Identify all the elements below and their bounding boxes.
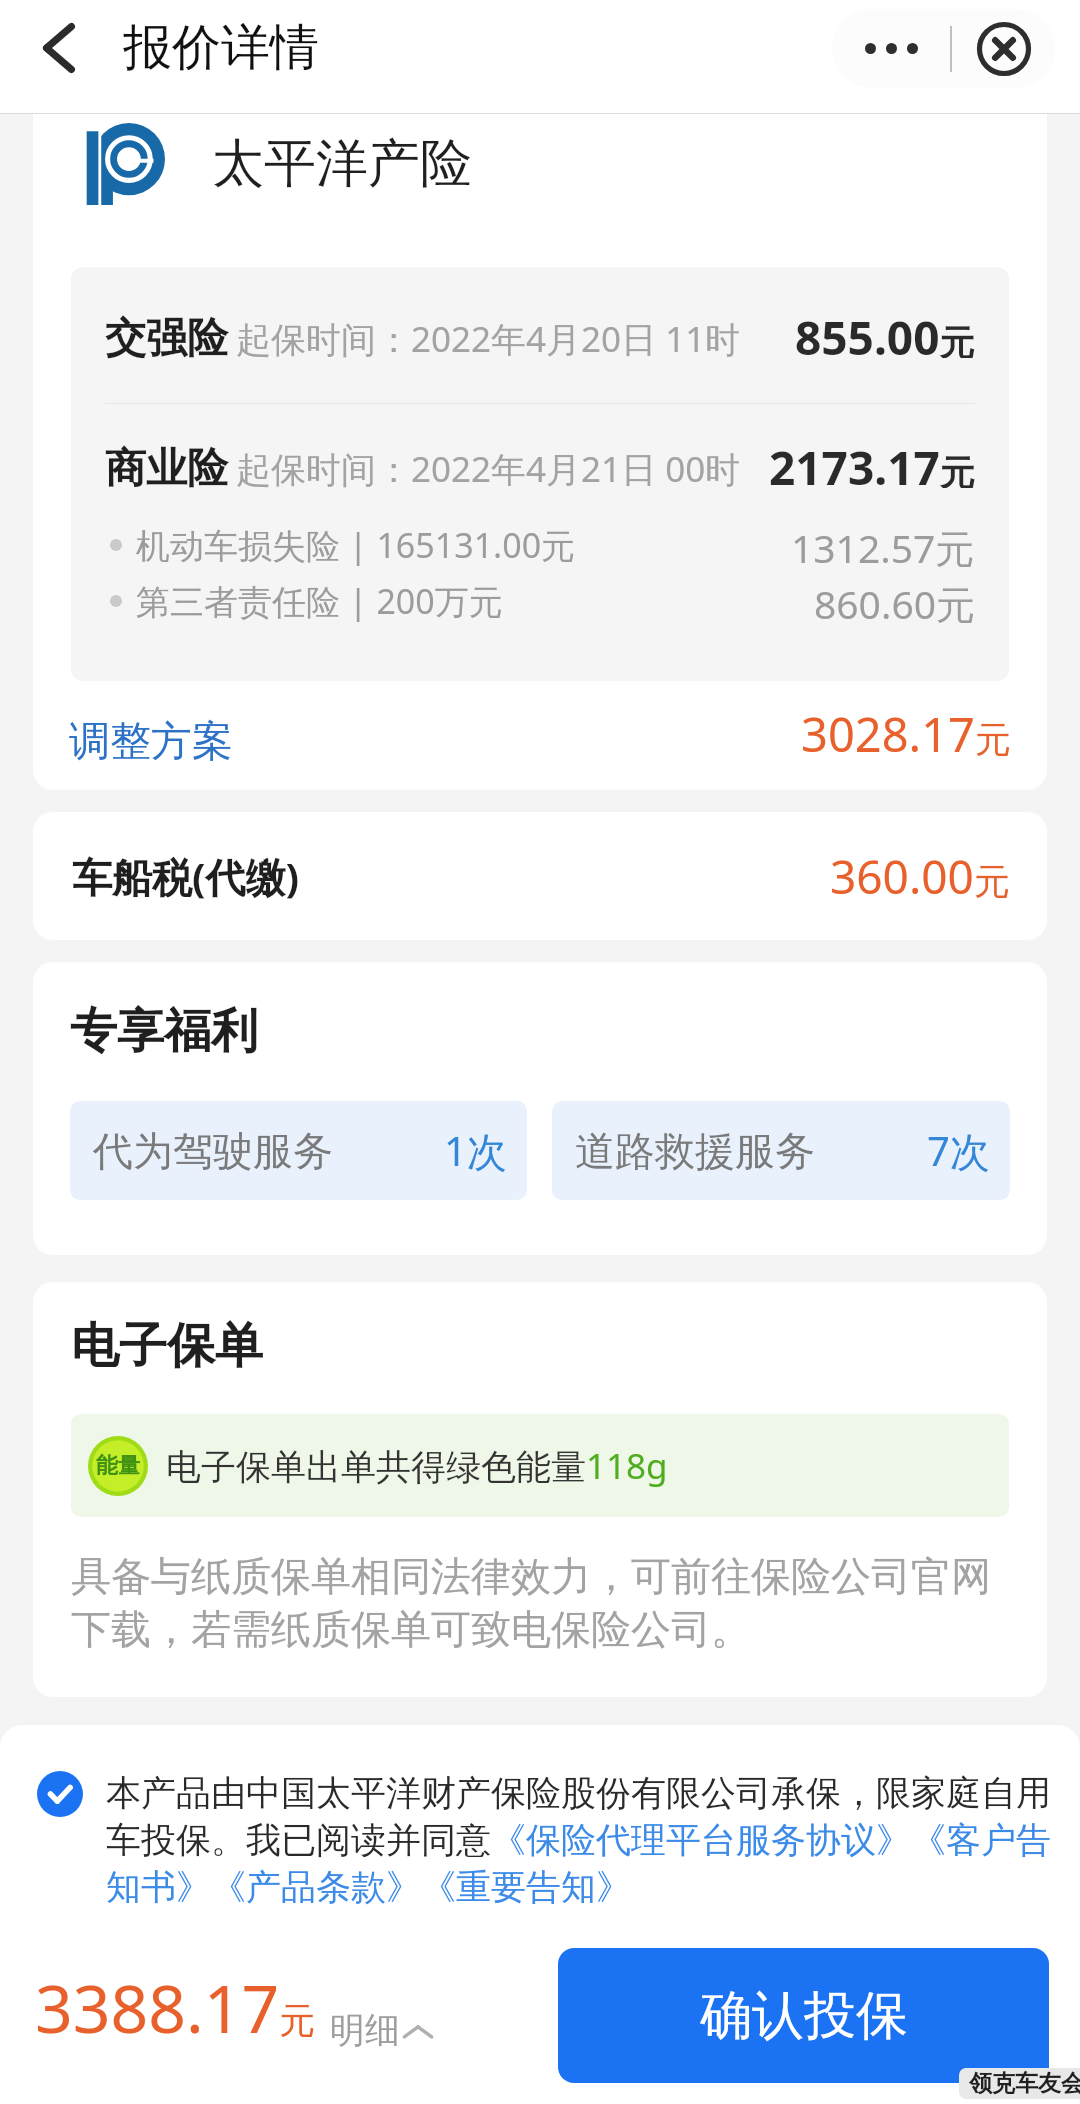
staticText: 1312.57元	[791, 521, 975, 569]
staticText: 855.00元	[795, 306, 975, 358]
staticText: 明细	[330, 2008, 400, 2052]
staticText: 3388.17元	[35, 1962, 316, 2052]
staticText: 起保时间：2022年4月21日 00时	[236, 445, 741, 493]
button[interactable]: 调整方案	[69, 716, 233, 768]
button[interactable]: More options	[832, 9, 950, 88]
button[interactable]: Agree to terms	[37, 1771, 83, 1817]
staticText: 道路救援服务	[575, 1126, 815, 1176]
staticText: 代为驾驶服务	[93, 1126, 333, 1176]
staticText: 电子保单	[71, 1316, 263, 1376]
button[interactable]: 确认投保	[558, 1948, 1049, 2083]
staticText: 交强险	[105, 313, 228, 365]
staticText: 车船税(代缴)	[72, 849, 300, 904]
button[interactable]: 代为驾驶服务	[70, 1101, 527, 1200]
staticText: 起保时间：2022年4月20日 11时	[236, 315, 741, 363]
staticText: 调整方案	[69, 716, 233, 768]
staticText: 第三者责任险 | 200万元	[136, 578, 503, 624]
staticText: 商业险	[105, 443, 228, 495]
button[interactable]: 道路救援服务	[552, 1101, 1010, 1200]
staticText: 2173.17元	[769, 436, 975, 488]
staticText: 本产品由中国太平洋财产保险股份有限公司承保，限家庭自用车投保。我已阅读并同意《保…	[106, 1771, 1054, 1909]
staticText: 860.60元	[814, 577, 975, 625]
button[interactable]: Close	[952, 9, 1055, 88]
staticText: 太平洋产险	[212, 131, 472, 197]
staticText: 具备与纸质保单相同法律效力，可前往保险公司官网下载，若需纸质保单可致电保险公司。	[71, 1551, 1009, 1654]
staticText: 1次	[444, 1123, 507, 1178]
staticText: 专享福利	[70, 1002, 258, 1061]
staticText: 3028.17元	[801, 702, 1011, 766]
staticText: 报价详情	[123, 17, 319, 79]
staticText: 确认投保	[700, 1983, 908, 2049]
staticText: 电子保单出单共得绿色能量118g	[166, 1442, 668, 1490]
staticText: 360.00元	[830, 845, 1010, 908]
staticText: 领克车友会	[969, 2069, 1080, 2098]
button[interactable]: Back	[0, 0, 118, 96]
button[interactable]: 明细	[330, 2008, 436, 2052]
staticText: 能量	[96, 1452, 140, 1480]
staticText: 机动车损失险 | 165131.00元	[136, 522, 576, 568]
staticText: 7次	[927, 1123, 990, 1178]
